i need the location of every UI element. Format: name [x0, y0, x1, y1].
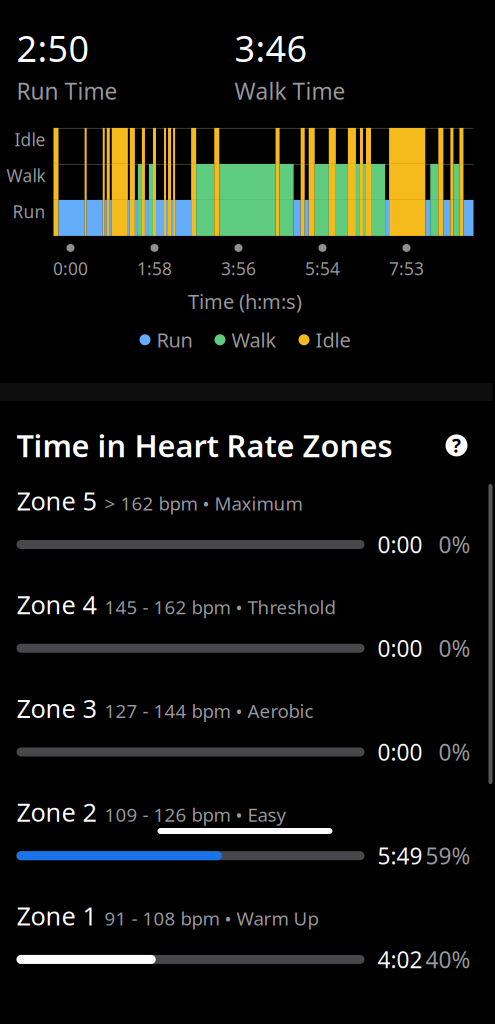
- staticText: 127 - 144 bpm • Aerobic: [104, 698, 313, 723]
- staticText: Time (h:m:s): [188, 288, 302, 314]
- staticText: 3:46: [234, 24, 307, 72]
- staticText: 145 - 162 bpm • Threshold: [104, 594, 335, 619]
- staticText: 0:00: [377, 633, 422, 663]
- staticText: Time in Heart Rate Zones: [16, 425, 392, 466]
- staticText: Walk: [231, 326, 276, 353]
- staticText: 0%: [438, 737, 470, 767]
- staticText: 4:02: [377, 944, 422, 974]
- staticText: Idle: [315, 326, 350, 353]
- staticText: 40%: [425, 944, 470, 974]
- staticText: Zone 3: [16, 691, 96, 725]
- staticText: 2:50: [16, 24, 89, 72]
- button[interactable]: About heart rate zones: [439, 428, 473, 462]
- staticText: ?: [452, 433, 461, 458]
- staticText: Zone 4: [16, 587, 96, 621]
- staticText: 59%: [425, 841, 470, 871]
- staticText: Zone 2: [16, 795, 96, 829]
- staticText: 0%: [438, 529, 470, 559]
- staticText: 5:49: [377, 841, 422, 871]
- staticText: 109 - 126 bpm • Easy: [104, 802, 286, 827]
- staticText: Walk: [6, 164, 45, 187]
- staticText: 0:00: [53, 257, 88, 280]
- staticText: 91 - 108 bpm • Warm Up: [104, 906, 318, 931]
- staticText: 3:56: [221, 257, 256, 280]
- staticText: Zone 1: [16, 899, 96, 932]
- staticText: Idle: [14, 128, 45, 151]
- staticText: 7:53: [389, 257, 424, 280]
- staticText: > 162 bpm • Maximum: [104, 491, 302, 516]
- staticText: Run: [12, 200, 45, 223]
- staticText: 5:54: [305, 257, 340, 280]
- staticText: Run: [156, 326, 192, 353]
- staticText: 0%: [438, 633, 470, 663]
- staticText: Walk Time: [234, 76, 345, 106]
- staticText: 1:58: [137, 257, 172, 280]
- staticText: Zone 5: [16, 484, 96, 517]
- staticText: 0:00: [377, 737, 422, 767]
- staticText: 0:00: [377, 529, 422, 559]
- staticText: Run Time: [16, 76, 117, 106]
